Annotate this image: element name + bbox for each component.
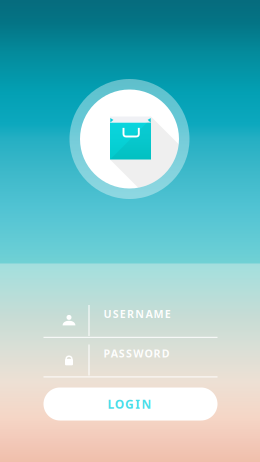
- staticText: PASSWORD: [103, 346, 170, 375]
- staticText: USERNAME: [103, 307, 171, 335]
- staticText: LOGIN: [107, 396, 154, 412]
- button[interactable]: LOGIN: [43, 387, 217, 420]
